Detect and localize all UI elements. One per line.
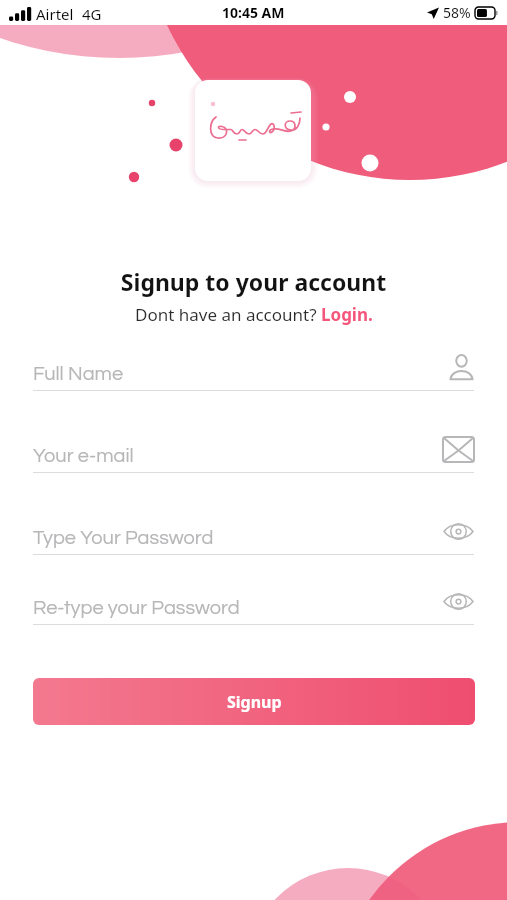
other: Name field [449,354,474,380]
staticText: 10:45 AM [222,3,285,22]
staticText: Re-type your Password [33,598,240,619]
staticText: 58% [443,3,471,22]
other: Confirm password field [443,592,474,611]
staticText: Type Your Password [33,528,214,549]
staticText: Signup to your account [33,266,474,297]
staticText: Dont have an account? [135,303,321,326]
button[interactable]: Type Your Password [33,515,474,555]
other: Email field [443,437,474,462]
staticText: Full Name [33,364,124,385]
button[interactable]: Login. [321,303,373,326]
button[interactable]: Signup [33,678,475,725]
button[interactable]: Re-type your Password [33,585,474,625]
button[interactable]: Full Name [33,351,474,391]
staticText: 4G [82,4,102,24]
staticText: Your e-mail [33,446,134,467]
staticText: Signup [227,691,282,713]
button[interactable]: Your e-mail [33,433,474,473]
other: Password field [443,522,474,541]
staticText: Airtel [36,4,74,24]
